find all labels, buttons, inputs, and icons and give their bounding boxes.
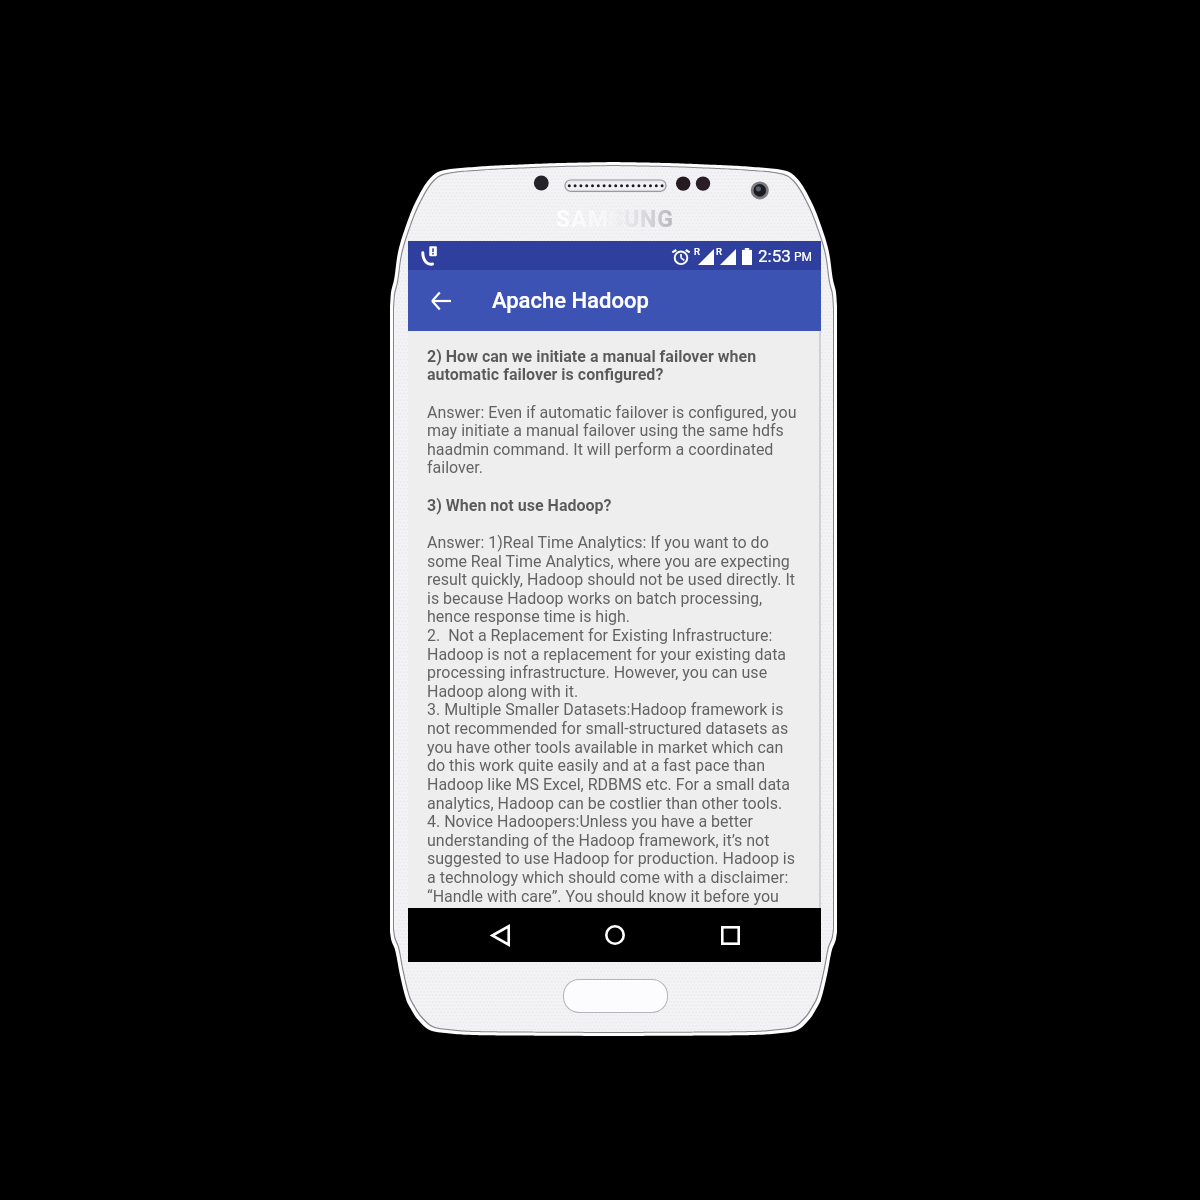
button[interactable]: Home — [564, 980, 667, 1012]
staticText: is because Hadoop works on batch process… — [427, 589, 763, 608]
staticText: Answer: 1)Real Time Analytics: If you wa… — [427, 533, 769, 552]
staticText: suggested to use Hadoop for production. … — [427, 849, 795, 868]
staticText: “Handle with care”. You should know it b… — [427, 887, 779, 906]
staticText: may initiate a manual failover using the… — [427, 421, 784, 440]
staticText: 2:53 — [758, 246, 791, 266]
staticText: 2. Not a Replacement for Existing Infras… — [427, 626, 773, 645]
staticText: R — [694, 246, 700, 257]
staticText: a technology which should come with a di… — [427, 868, 789, 887]
staticText: 3. Multiple Smaller Datasets:Hadoop fram… — [427, 700, 784, 719]
staticText: you have other tools available in market… — [427, 738, 784, 757]
staticText: Hadoop along with it. — [427, 682, 579, 701]
button[interactable]: Back — [471, 908, 529, 962]
staticText: Answer: Even if automatic failover is co… — [427, 403, 797, 422]
staticText: Apache Hadoop — [492, 288, 649, 314]
staticText: do this work quite easily and at a fast … — [427, 756, 766, 775]
staticText: understanding of the Hadoop framework, i… — [427, 831, 770, 850]
staticText: not recommended for small-structured dat… — [427, 719, 789, 738]
button[interactable]: Back — [427, 287, 455, 315]
button[interactable]: Home — [586, 908, 644, 962]
staticText: 3) When not use Hadoop? — [427, 496, 612, 515]
staticText: Hadoop is not a replacement for your exi… — [427, 645, 787, 664]
staticText: 2) How can we initiate a manual failover… — [427, 347, 757, 366]
staticText: PM — [794, 250, 813, 264]
staticText: hence response time is high. — [427, 607, 631, 626]
staticText: analytics, Hadoop can be costlier than o… — [427, 794, 783, 813]
staticText: result quickly, Hadoop should not be use… — [427, 570, 796, 589]
staticText: automatic failover is configured? — [427, 365, 664, 384]
staticText: Hadoop like MS Excel, RDBMS etc. For a s… — [427, 775, 791, 794]
staticText: processing infrastructure. However, you … — [427, 663, 768, 682]
staticText: 4. Novice Hadoopers:Unless you have a be… — [427, 812, 753, 831]
button[interactable]: Recents — [701, 908, 759, 962]
staticText: haadmin command. It will perform a coord… — [427, 440, 774, 459]
staticText: SAMSUNG — [556, 206, 674, 233]
staticText: some Real Time Analytics, where you are … — [427, 552, 790, 571]
staticText: R — [716, 246, 722, 257]
staticText: failover. — [427, 458, 483, 477]
